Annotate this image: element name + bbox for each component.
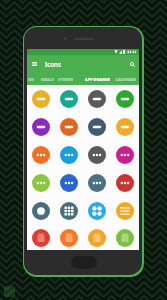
button[interactable]: App icon: [60, 90, 78, 108]
button[interactable]: App icon: [32, 90, 50, 108]
staticText: Icons: [45, 60, 61, 68]
button[interactable]: App icon: [88, 229, 106, 247]
staticText: SYSTEM: [58, 77, 73, 82]
button[interactable]: Search: [127, 58, 137, 70]
button[interactable]: App icon: [60, 146, 78, 164]
button[interactable]: App icon: [60, 229, 78, 247]
button[interactable]: Open navigation menu: [30, 58, 39, 70]
button[interactable]: App icon: [116, 118, 134, 136]
button[interactable]: App icon: [88, 202, 106, 220]
staticText: WALLS: [41, 77, 54, 82]
button[interactable]: App icon: [32, 118, 50, 136]
staticText: APP DRAWER: [85, 77, 110, 82]
button[interactable]: App icon: [32, 174, 50, 192]
button[interactable]: App icon: [32, 146, 50, 164]
button[interactable]: App icon: [116, 174, 134, 192]
button[interactable]: App icon: [88, 118, 106, 136]
button[interactable]: App icon: [88, 90, 106, 108]
button[interactable]: App icon: [60, 118, 78, 136]
button[interactable]: App icon: [116, 90, 134, 108]
button[interactable]: SYSTEM: [53, 73, 77, 85]
button[interactable]: App icon: [88, 174, 106, 192]
button[interactable]: App icon: [32, 202, 50, 220]
button[interactable]: App icon: [116, 229, 134, 247]
button[interactable]: App icon: [60, 202, 78, 220]
button[interactable]: APP DRAWER: [82, 73, 112, 85]
staticText: NS: [28, 77, 34, 82]
button[interactable]: WALLS: [36, 73, 58, 85]
staticText: CALENDAR: [115, 77, 136, 82]
button[interactable]: NS: [24, 73, 38, 85]
button[interactable]: App icon: [116, 202, 134, 220]
button[interactable]: CALENDAR: [112, 73, 138, 85]
button[interactable]: App icon: [116, 146, 134, 164]
button[interactable]: App icon: [88, 146, 106, 164]
button[interactable]: App icon: [32, 229, 50, 247]
button[interactable]: App icon: [60, 174, 78, 192]
